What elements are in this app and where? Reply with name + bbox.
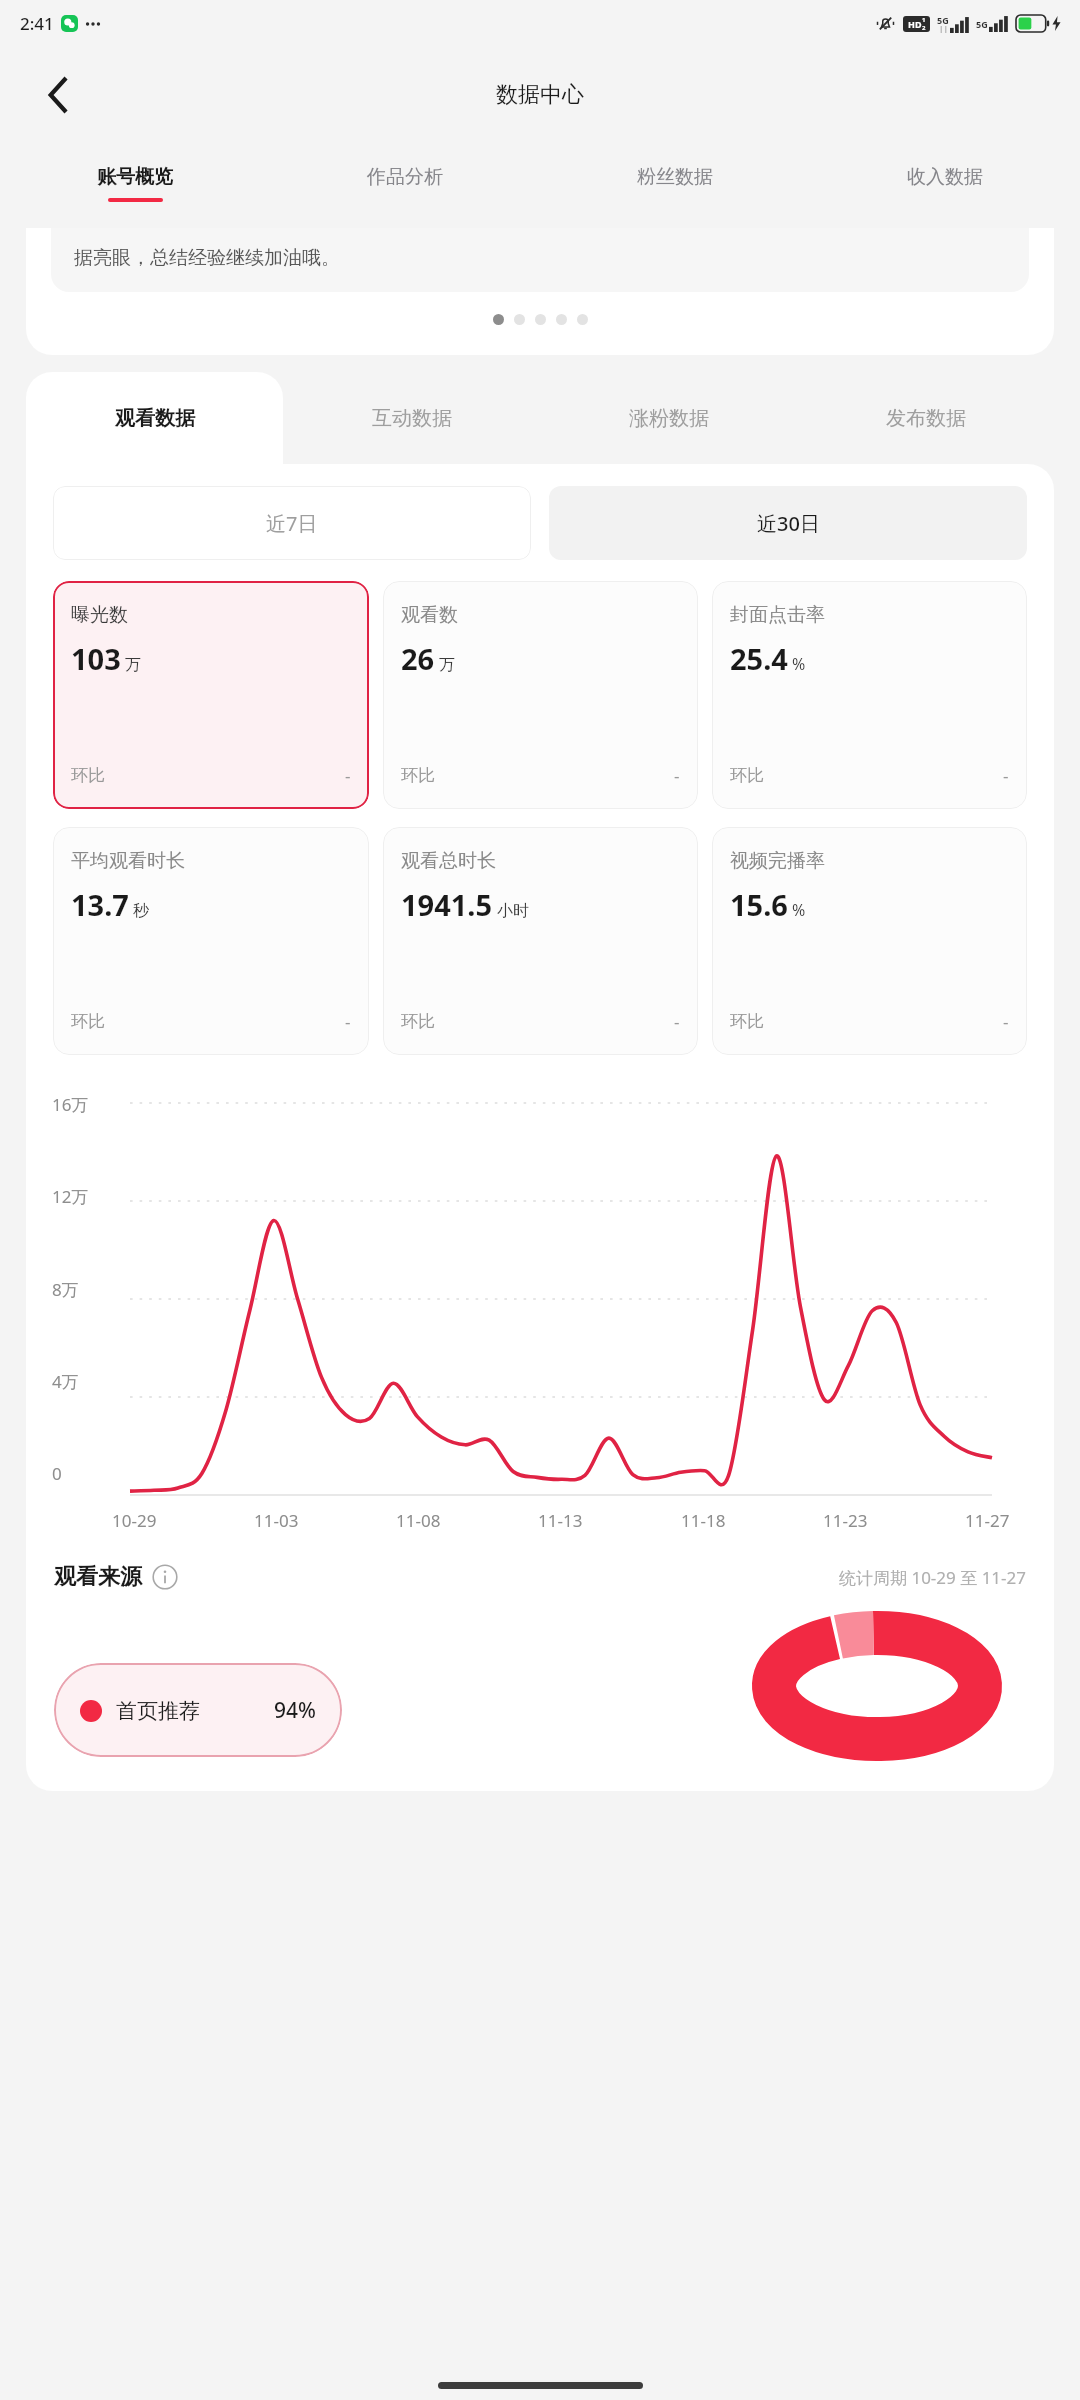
staticText: 据亮眼，总结经验继续加油哦。 bbox=[74, 246, 340, 270]
button[interactable]: 首页推荐 bbox=[54, 1663, 342, 1757]
staticText: 近7日 bbox=[266, 510, 318, 537]
staticText: 万 bbox=[439, 655, 455, 675]
staticText: 环比 bbox=[401, 765, 435, 786]
staticText: 秒 bbox=[133, 901, 149, 921]
staticText: 5G bbox=[937, 14, 949, 26]
staticText: 2 bbox=[922, 24, 926, 32]
staticText: 环比 bbox=[71, 765, 105, 786]
staticText: 近30日 bbox=[757, 510, 820, 537]
staticText: 小时 bbox=[497, 901, 529, 921]
staticText: 1941.5 bbox=[401, 885, 493, 924]
staticText: 账号概览 bbox=[97, 165, 173, 189]
staticText: 26 bbox=[401, 639, 435, 678]
button[interactable]: 互动数据 bbox=[283, 372, 540, 464]
staticText: 0 bbox=[52, 1462, 62, 1485]
staticText: 15.6 bbox=[730, 885, 788, 924]
staticText: - bbox=[674, 764, 680, 787]
staticText: 作品分析 bbox=[367, 165, 443, 189]
staticText: 环比 bbox=[730, 1011, 764, 1032]
staticText: 11-03 bbox=[254, 1509, 299, 1532]
button[interactable]: 近7日 bbox=[53, 486, 531, 560]
staticText: 103 bbox=[71, 639, 121, 678]
staticText: 统计周期 10-29 至 11-27 bbox=[839, 1566, 1026, 1589]
staticText: - bbox=[1003, 764, 1009, 787]
staticText: 11-23 bbox=[823, 1509, 868, 1532]
staticText: 8万 bbox=[52, 1278, 79, 1301]
staticText: - bbox=[674, 1010, 680, 1033]
button[interactable]: 说明 bbox=[151, 1563, 179, 1591]
button[interactable]: 曝光数 bbox=[53, 581, 369, 809]
staticText: 16万 bbox=[52, 1093, 89, 1116]
button[interactable]: 视频完播率 bbox=[712, 827, 1027, 1055]
staticText: - bbox=[345, 764, 351, 787]
staticText: 4万 bbox=[52, 1370, 79, 1393]
staticText: 平均观看时长 bbox=[71, 849, 185, 873]
staticText: - bbox=[345, 1010, 351, 1033]
staticText: 环比 bbox=[730, 765, 764, 786]
staticText: 观看数 bbox=[401, 603, 458, 627]
button[interactable]: 近30日 bbox=[549, 486, 1027, 560]
staticText: 收入数据 bbox=[907, 165, 983, 189]
button[interactable]: 粉丝数据 bbox=[540, 144, 810, 222]
staticText: 数据中心 bbox=[496, 81, 584, 109]
staticText: 发布数据 bbox=[886, 406, 966, 431]
button[interactable]: 收入数据 bbox=[810, 144, 1080, 222]
staticText: 涨粉数据 bbox=[629, 406, 709, 431]
staticText: 11-13 bbox=[538, 1509, 583, 1532]
button[interactable]: 账号概览 bbox=[0, 144, 270, 222]
staticText: 观看数据 bbox=[115, 406, 195, 431]
button[interactable]: 作品分析 bbox=[270, 144, 540, 222]
staticText: 封面点击率 bbox=[730, 603, 825, 627]
staticText: 曝光数 bbox=[71, 603, 128, 627]
staticText: 2:41 bbox=[20, 12, 54, 35]
staticText: - bbox=[1003, 1010, 1009, 1033]
staticText: % bbox=[792, 899, 806, 921]
button[interactable]: 观看数据 bbox=[26, 372, 283, 464]
staticText: 11-27 bbox=[965, 1509, 1010, 1532]
staticText: 1 bbox=[922, 16, 926, 24]
staticText: 5G bbox=[976, 18, 988, 30]
staticText: 首页推荐 bbox=[116, 1698, 200, 1724]
button[interactable]: 发布数据 bbox=[797, 372, 1054, 464]
button[interactable]: 平均观看时长 bbox=[53, 827, 369, 1055]
staticText: 25.4 bbox=[730, 639, 788, 678]
staticText: 11-18 bbox=[681, 1509, 726, 1532]
staticText: 观看来源 bbox=[54, 1563, 142, 1591]
staticText: 10-29 bbox=[112, 1509, 157, 1532]
staticText: 94% bbox=[274, 1696, 316, 1725]
staticText: 12万 bbox=[52, 1185, 89, 1208]
staticText: 互动数据 bbox=[372, 406, 452, 431]
staticText: 视频完播率 bbox=[730, 849, 825, 873]
staticText: 环比 bbox=[401, 1011, 435, 1032]
button[interactable]: 据亮眼，总结经验继续加油哦。 bbox=[26, 228, 1054, 355]
staticText: 11-08 bbox=[396, 1509, 441, 1532]
staticText: % bbox=[792, 653, 806, 675]
staticText: 万 bbox=[125, 655, 141, 675]
button[interactable]: 返回 bbox=[34, 70, 84, 120]
button[interactable]: 观看总时长 bbox=[383, 827, 698, 1055]
button[interactable]: 封面点击率 bbox=[712, 581, 1027, 809]
staticText: HD bbox=[908, 18, 922, 30]
button[interactable]: 观看数 bbox=[383, 581, 698, 809]
staticText: 粉丝数据 bbox=[637, 165, 713, 189]
staticText: 观看总时长 bbox=[401, 849, 496, 873]
button[interactable]: 涨粉数据 bbox=[540, 372, 797, 464]
staticText: 13.7 bbox=[71, 885, 129, 924]
staticText: 环比 bbox=[71, 1011, 105, 1032]
